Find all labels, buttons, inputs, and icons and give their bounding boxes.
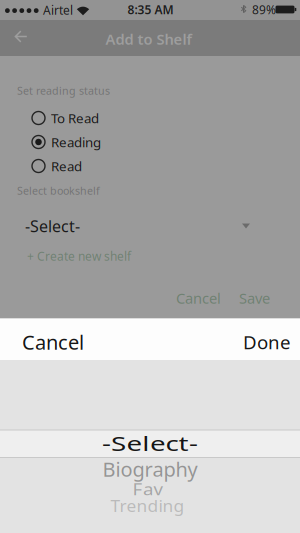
staticText: Add to Shelf [105,29,191,49]
staticText: Select bookshelf [17,183,100,198]
button[interactable]: Cancel [170,286,226,310]
staticText: Set reading status [17,83,110,98]
staticText: To Read [51,109,99,127]
button[interactable]: Save [232,286,276,310]
staticText: Read [51,157,82,175]
staticText: Trending [110,494,184,517]
staticText: Biography [102,456,197,483]
staticText: Done [243,330,291,354]
button[interactable]: Reading [0,131,300,153]
button[interactable]: Back [6,21,36,51]
staticText: Save [239,288,270,308]
staticText: 8:35 AM [127,1,173,17]
staticText: Reading [51,133,101,151]
button[interactable]: + Create new shelf [0,248,300,264]
staticText: Cancel [22,329,84,355]
staticText: + Create new shelf [27,248,131,264]
staticText: 89% [252,1,276,17]
button[interactable]: Read [0,155,300,177]
button[interactable]: Cancel [0,321,110,363]
staticText: -Select- [25,215,80,237]
staticText: -Select- [113,429,187,457]
button[interactable]: To Read [0,107,300,129]
button[interactable]: Done [200,321,300,363]
staticText: Cancel [176,288,221,308]
button[interactable]: -Select- [16,211,284,241]
staticText: Fav [132,477,163,501]
staticText: Airtel [43,2,73,18]
